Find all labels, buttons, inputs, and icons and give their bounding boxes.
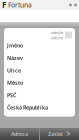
staticText: PSČ bbox=[7, 92, 16, 99]
staticText: Fortuna bbox=[8, 1, 32, 9]
staticText: odeslat bbox=[51, 35, 63, 40]
staticText: Zaslat bbox=[48, 130, 63, 138]
staticText: Název bbox=[7, 54, 23, 61]
staticText: > bbox=[66, 129, 71, 139]
button[interactable]: Jméno bbox=[4, 42, 75, 54]
staticText: Ulice bbox=[7, 67, 21, 74]
button[interactable]: Název bbox=[4, 54, 75, 67]
staticText: Česká Republika bbox=[7, 104, 48, 111]
button[interactable]: Město bbox=[4, 79, 75, 92]
button[interactable]: Česká Republika bbox=[4, 104, 75, 116]
staticText: F bbox=[2, 0, 6, 10]
staticText: Město bbox=[7, 79, 23, 86]
button[interactable]: Ulice bbox=[4, 67, 75, 79]
button[interactable]: Zaslat bbox=[40, 128, 79, 140]
button[interactable]: Adresa bbox=[0, 128, 39, 140]
staticText: Jméno bbox=[7, 42, 23, 49]
staticText: Adresa bbox=[11, 130, 28, 138]
staticText: odeslat bbox=[51, 30, 63, 35]
button[interactable]: PSČ bbox=[4, 92, 75, 104]
